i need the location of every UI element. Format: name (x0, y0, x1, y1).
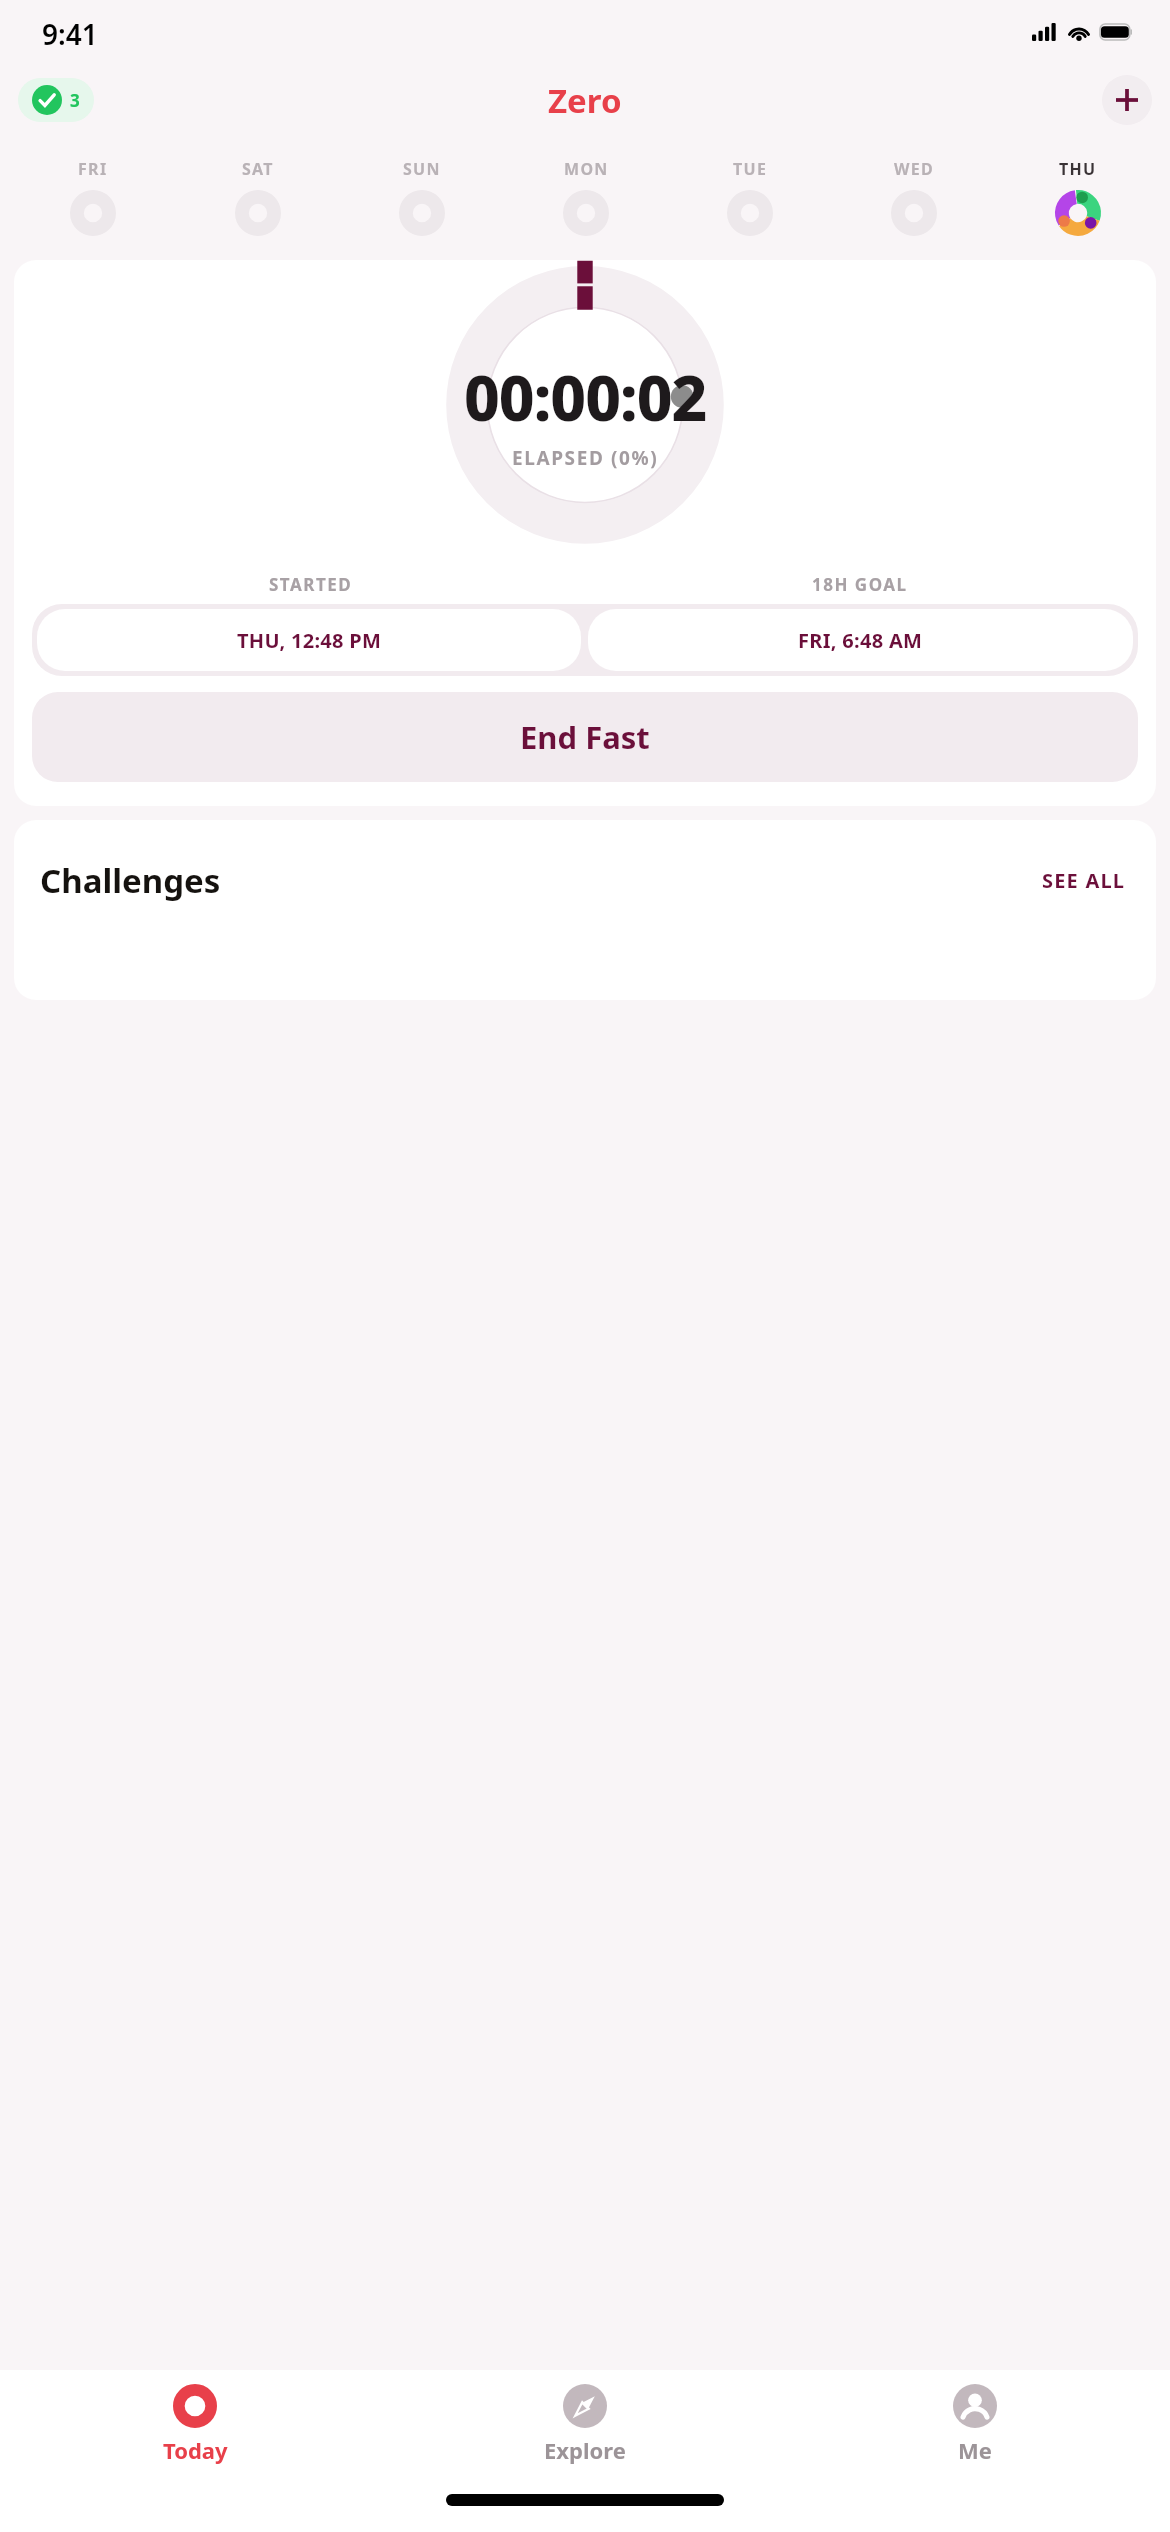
button[interactable]: THU (996, 156, 1160, 238)
button[interactable]: Add fast (1102, 75, 1152, 125)
staticText: Challenges (40, 858, 221, 903)
staticText: SUN (403, 158, 441, 180)
button[interactable]: SEE ALL (1038, 863, 1130, 898)
staticText: SEE ALL (1042, 867, 1126, 894)
staticText: TUE (733, 158, 768, 180)
button[interactable]: WED (832, 156, 996, 238)
staticText: Today (163, 2435, 228, 2465)
staticText: THU, 12:48 PM (237, 627, 382, 654)
button[interactable]: Me (780, 2370, 1170, 2488)
staticText: Me (958, 2435, 992, 2465)
button[interactable]: Explore (390, 2370, 780, 2488)
staticText: End Fast (520, 716, 650, 758)
staticText: 3 (70, 89, 80, 112)
staticText: THU (1059, 158, 1097, 180)
staticText: 9:41 (42, 15, 98, 53)
staticText: 00:00:02 (464, 355, 707, 439)
button[interactable]: THU, 12:48 PM (37, 609, 581, 671)
button[interactable]: FRI, 6:48 AM (588, 609, 1133, 671)
button[interactable]: SAT (175, 156, 340, 238)
button[interactable]: End Fast (32, 692, 1138, 782)
staticText: MON (564, 158, 609, 180)
button[interactable]: SUN (340, 156, 504, 238)
button[interactable]: 3 (18, 78, 94, 122)
staticText: FRI (78, 158, 108, 180)
button[interactable]: MON (504, 156, 668, 238)
button[interactable]: FRI (10, 156, 175, 238)
staticText: ELAPSED (0%) (512, 445, 659, 471)
button[interactable]: Today (0, 2370, 390, 2488)
staticText: SAT (242, 158, 274, 180)
staticText: Zero (548, 78, 622, 123)
staticText: WED (894, 158, 935, 180)
button[interactable]: TUE (668, 156, 832, 238)
staticText: STARTED (269, 573, 353, 596)
staticText: 18H GOAL (812, 573, 908, 596)
staticText: Explore (544, 2435, 626, 2465)
staticText: FRI, 6:48 AM (798, 627, 923, 654)
